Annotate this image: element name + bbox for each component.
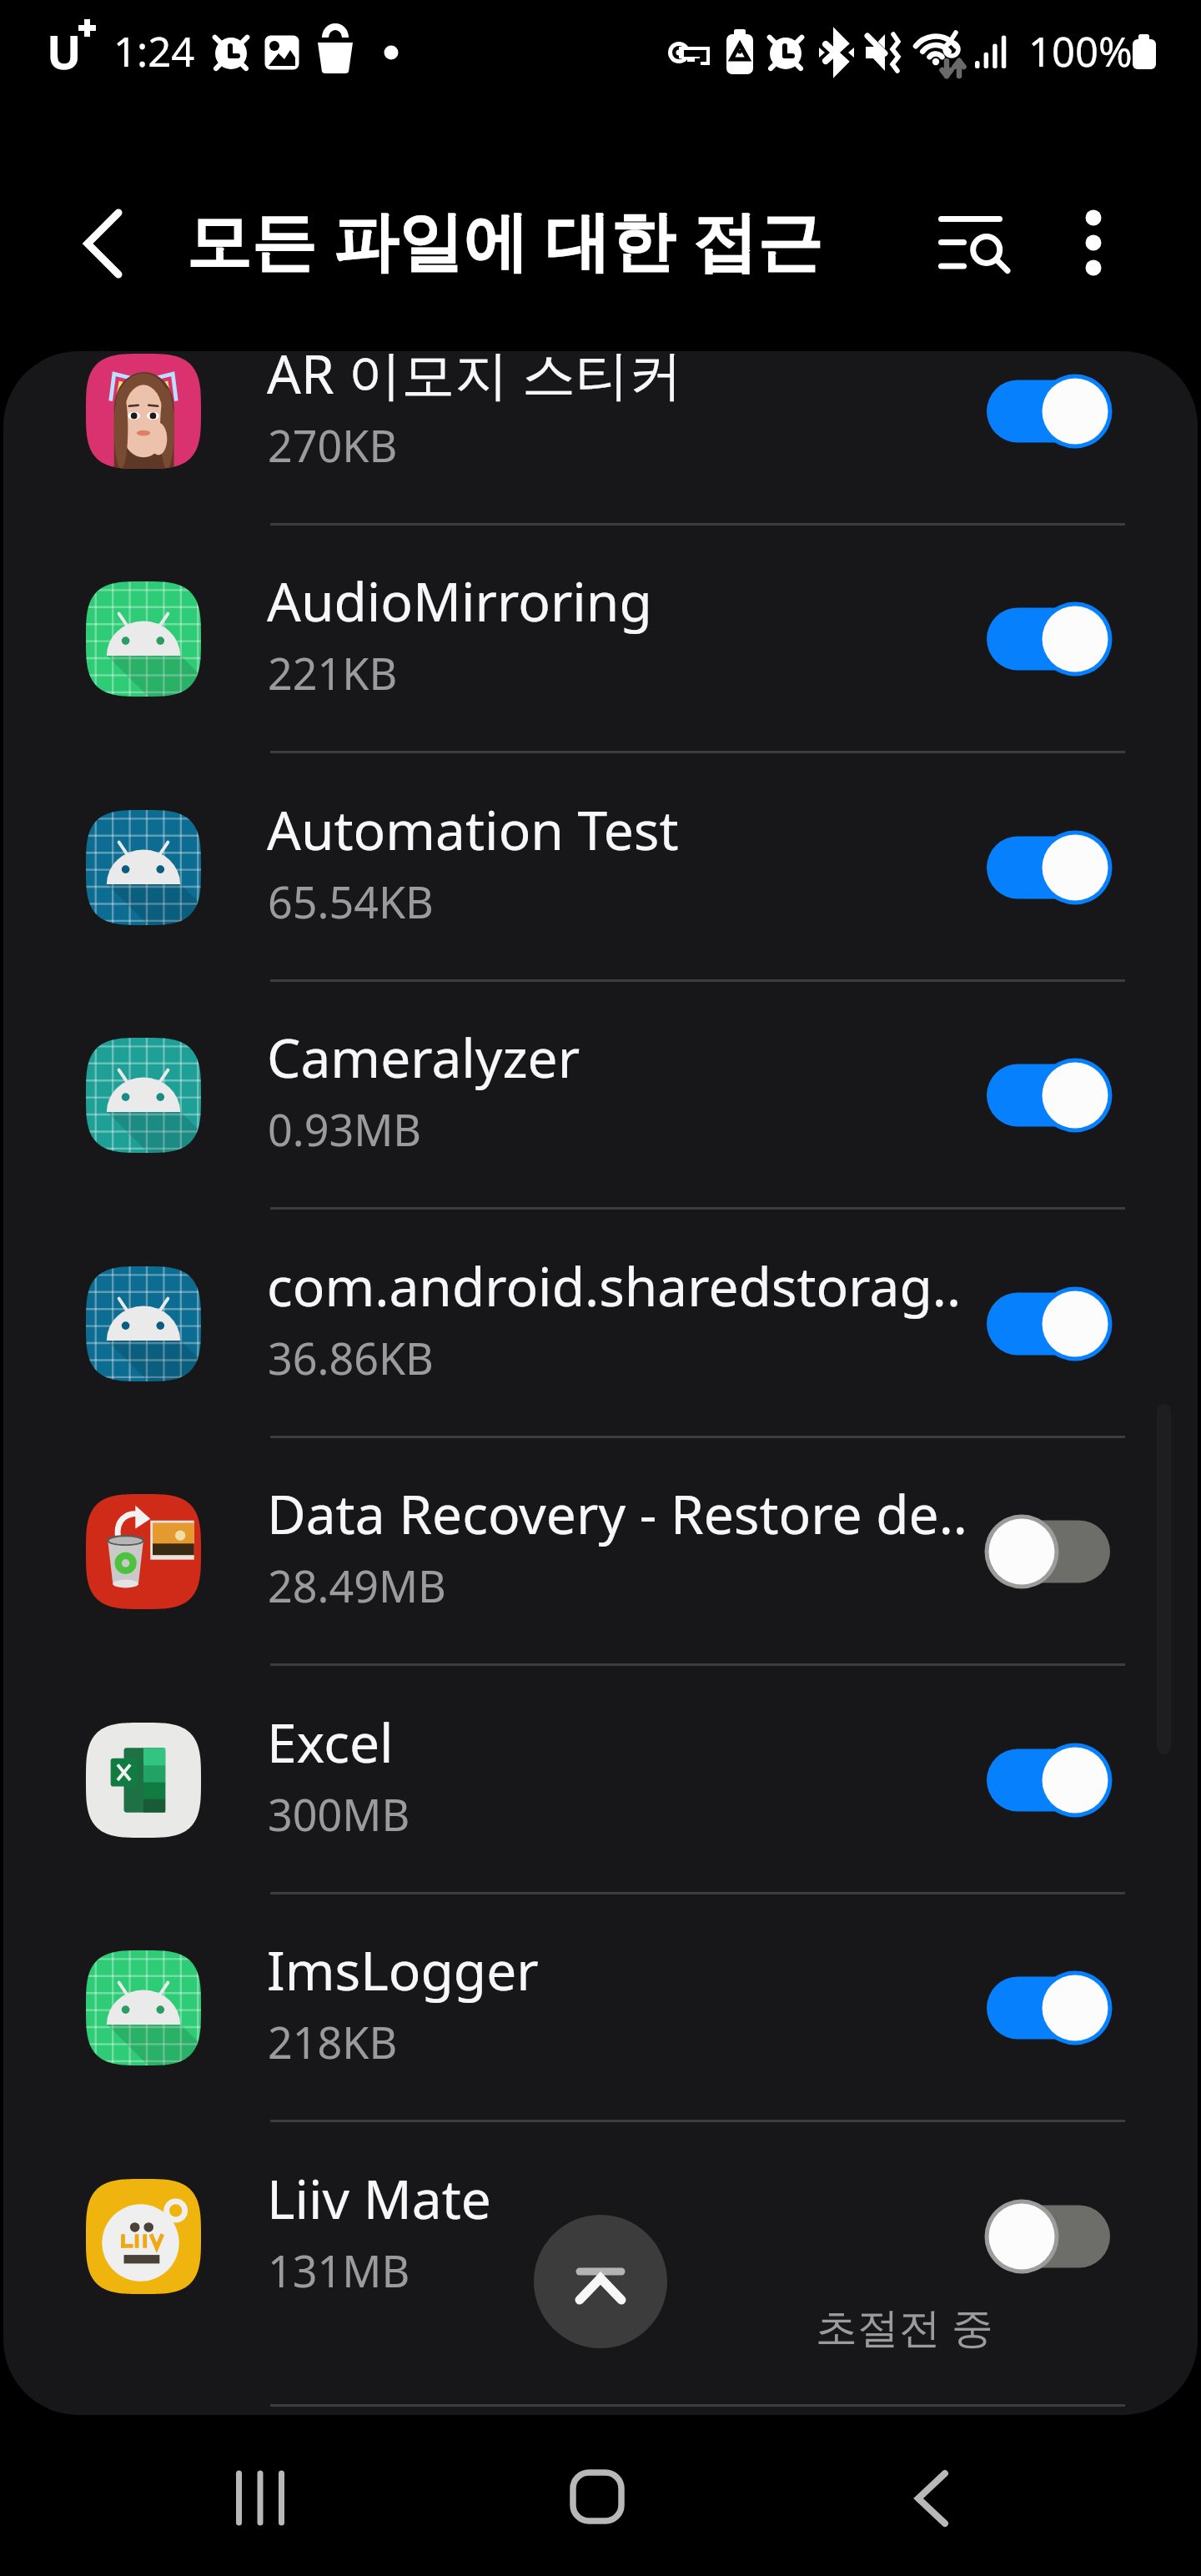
staticText: Data Recovery - Restore de.. bbox=[267, 1477, 967, 1550]
staticText: 221KB bbox=[268, 643, 398, 702]
staticText: Excel bbox=[267, 1706, 394, 1779]
staticText: 28.49MB bbox=[268, 1556, 446, 1615]
staticText: 100% bbox=[1028, 23, 1133, 79]
button[interactable]: Turn off bbox=[967, 822, 1129, 913]
staticText: Liiv Mate bbox=[267, 2162, 491, 2235]
staticText: 36.86KB bbox=[268, 1328, 434, 1387]
button[interactable]: Turn off bbox=[967, 1278, 1129, 1370]
button[interactable]: Home bbox=[529, 2443, 662, 2576]
button[interactable]: More options bbox=[1043, 200, 1143, 300]
staticText: 초절전 중 bbox=[816, 2298, 993, 2355]
staticText: AudioMirroring bbox=[267, 565, 652, 637]
button[interactable]: Turn on bbox=[967, 1506, 1129, 1597]
staticText: AR 이모지 스티커 bbox=[267, 351, 682, 410]
staticText: Cameralyzer bbox=[267, 1021, 580, 1094]
button[interactable]: Data Recovery - Restore de.. bbox=[3, 1437, 1198, 1666]
button[interactable]: Turn off bbox=[967, 365, 1129, 457]
button[interactable]: Turn off bbox=[967, 1734, 1129, 1826]
staticText: com.android.sharedstorag.. bbox=[267, 1250, 962, 1322]
staticText: 270KB bbox=[268, 415, 398, 475]
staticText: 131MB bbox=[268, 2241, 410, 2300]
button[interactable]: Turn on bbox=[967, 2191, 1129, 2282]
button[interactable]: Turn off bbox=[967, 1049, 1129, 1141]
button[interactable]: Scroll to top bbox=[534, 2215, 667, 2348]
button[interactable]: AR 이모지 스티커 bbox=[3, 351, 1198, 526]
button[interactable]: Excel bbox=[3, 1666, 1198, 1894]
staticText: 1:24 bbox=[113, 23, 195, 79]
button[interactable]: Cameralyzer bbox=[3, 981, 1198, 1210]
staticText: 모든 파일에 대한 접근 bbox=[186, 195, 822, 284]
staticText: Automation Test bbox=[267, 793, 679, 866]
button[interactable]: AudioMirroring bbox=[3, 525, 1198, 753]
button[interactable]: Search bbox=[926, 200, 1026, 300]
staticText: 218KB bbox=[268, 2012, 398, 2071]
button[interactable]: Liiv Mate bbox=[3, 2122, 1198, 2407]
button[interactable]: Turn off bbox=[967, 1962, 1129, 2054]
button[interactable]: Automation Test bbox=[3, 753, 1198, 982]
staticText: ImsLogger bbox=[267, 1934, 539, 2006]
button[interactable]: ImsLogger bbox=[3, 1894, 1198, 2122]
button[interactable]: Recents bbox=[193, 2443, 327, 2576]
button[interactable]: Back bbox=[867, 2443, 1001, 2576]
staticText: 65.54KB bbox=[268, 872, 434, 931]
button[interactable]: Back bbox=[53, 194, 153, 294]
staticText: 0.93MB bbox=[268, 1099, 422, 1159]
staticText: 300MB bbox=[268, 1784, 410, 1844]
staticText: U bbox=[47, 20, 82, 83]
button[interactable]: Turn off bbox=[967, 593, 1129, 685]
button[interactable]: com.android.sharedstorag.. bbox=[3, 1210, 1198, 1438]
